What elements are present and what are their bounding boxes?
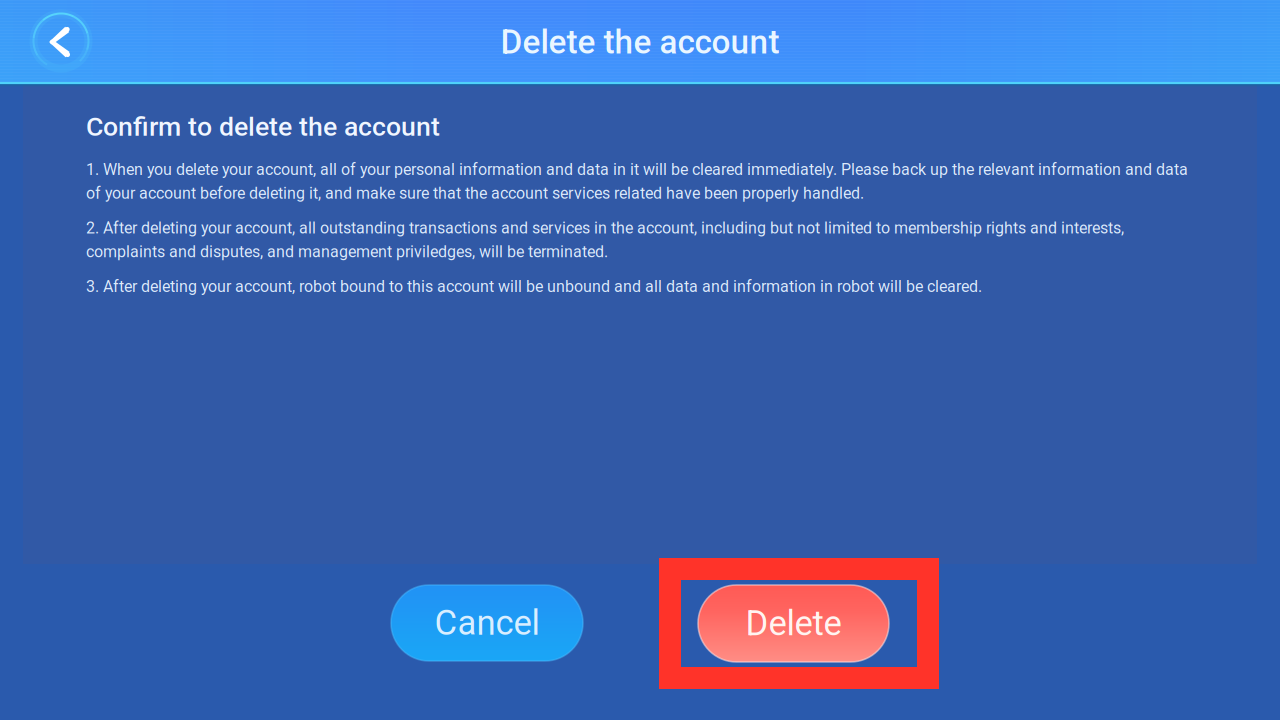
staticText: 2. After deleting your account, all outs… (86, 219, 1124, 261)
staticText: Confirm to delete the account (86, 111, 440, 142)
button[interactable]: Back (25, 5, 97, 77)
staticText: Cancel (434, 603, 539, 643)
staticText: Delete the account (500, 22, 779, 62)
staticText: 1. When you delete your account, all of … (86, 160, 1188, 203)
button[interactable]: Delete (698, 585, 889, 662)
staticText: Delete (745, 603, 841, 644)
button[interactable]: Cancel (391, 585, 583, 661)
staticText: 3. After deleting your account, robot bo… (86, 277, 982, 296)
